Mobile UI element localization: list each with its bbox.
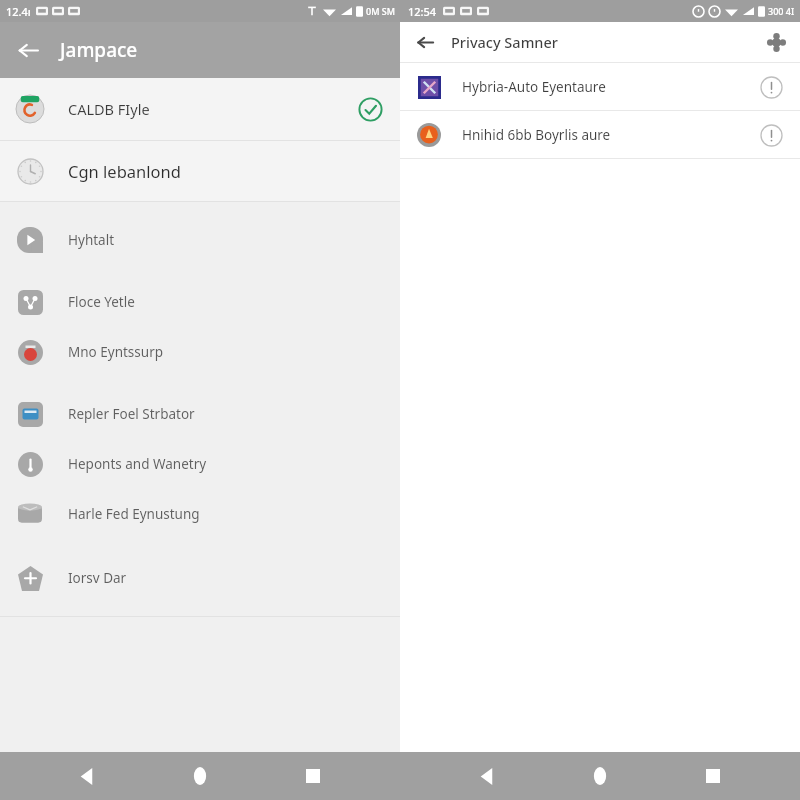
button[interactable]: Recents xyxy=(687,752,739,800)
staticText: Mno Eyntssurp xyxy=(68,343,164,361)
staticText: 300 4I xyxy=(768,5,795,17)
staticText: Hyhtalt xyxy=(68,231,115,249)
button[interactable]: Floce Yetle xyxy=(0,278,400,326)
button[interactable]: Back xyxy=(408,25,442,59)
button[interactable]: Iorsv Dar xyxy=(0,554,400,602)
staticText: Hnihid 6bb Boyrlis aure xyxy=(462,126,611,144)
button[interactable]: Details xyxy=(756,120,786,150)
staticText: Harle Fed Eynustung xyxy=(68,505,200,523)
button[interactable]: Heponts and Wanetry xyxy=(0,440,400,488)
button[interactable]: Add-ons xyxy=(760,26,792,58)
staticText: Cgn lebanlond xyxy=(68,160,181,182)
button[interactable]: Back xyxy=(6,28,50,72)
staticText: Floce Yetle xyxy=(68,293,135,311)
button[interactable]: Info xyxy=(756,72,786,102)
button[interactable]: Cgn lebanlond xyxy=(0,141,400,201)
button[interactable]: Recents xyxy=(287,752,339,800)
button[interactable]: Repler Foel Strbator xyxy=(0,390,400,438)
button[interactable]: Home xyxy=(174,752,226,800)
button[interactable]: Hyhtalt xyxy=(0,216,400,264)
button[interactable]: CALDB FIyle xyxy=(0,78,400,140)
staticText: Repler Foel Strbator xyxy=(68,405,195,423)
staticText: 12.4ı xyxy=(6,4,31,19)
button[interactable]: Harle Fed Eynustung xyxy=(0,490,400,538)
button[interactable]: Hybria-Auto Eyentaure xyxy=(400,63,800,110)
staticText: Privacy Samner xyxy=(451,32,558,52)
staticText: CALDB FIyle xyxy=(68,99,150,119)
staticText: 12:54 xyxy=(408,4,437,19)
staticText: 0M SM xyxy=(366,5,395,17)
staticText: Hybria-Auto Eyentaure xyxy=(462,78,606,96)
staticText: Jampace xyxy=(60,37,138,63)
button[interactable]: Hnihid 6bb Boyrlis aure xyxy=(400,111,800,158)
button[interactable]: Home xyxy=(574,752,626,800)
staticText: Heponts and Wanetry xyxy=(68,455,207,473)
button[interactable]: Mno Eyntssurp xyxy=(0,328,400,376)
button[interactable]: Back xyxy=(61,752,113,800)
staticText: Iorsv Dar xyxy=(68,569,127,587)
button[interactable]: Back xyxy=(461,752,513,800)
